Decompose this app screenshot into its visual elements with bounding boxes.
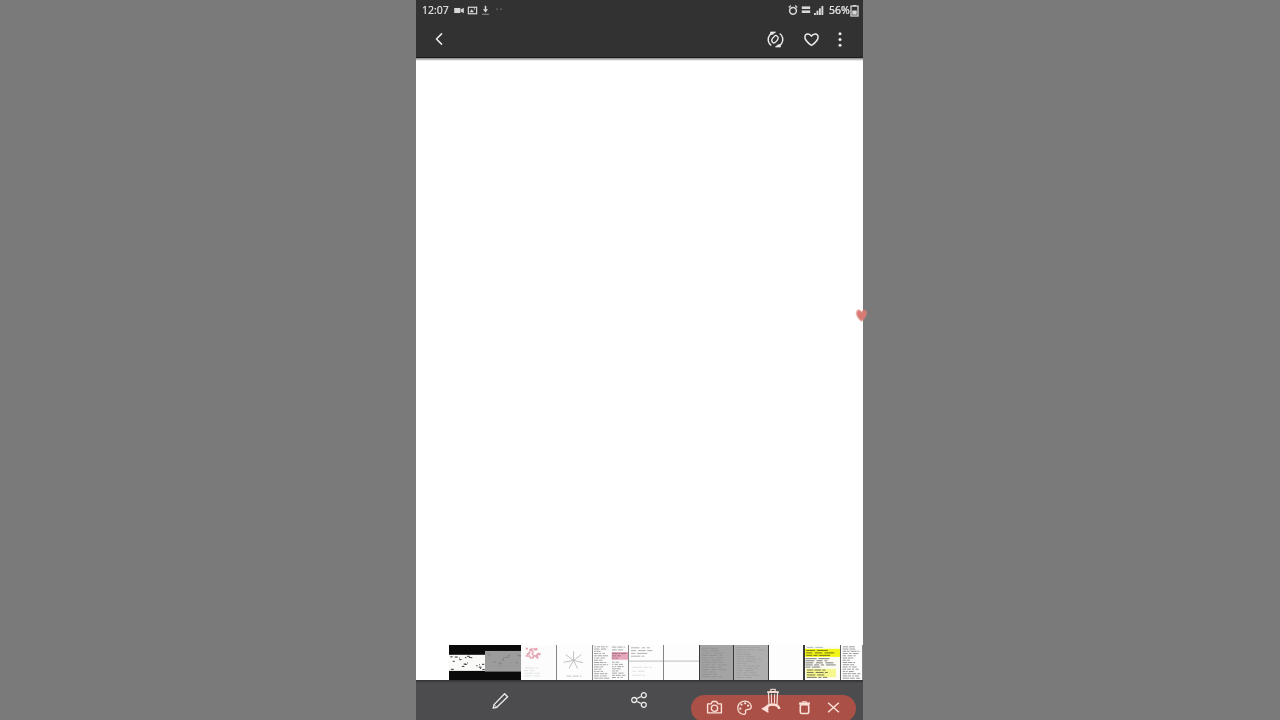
button[interactable]: Page 2 [485, 645, 521, 680]
button[interactable]: More options [826, 25, 854, 53]
staticText: 56% [829, 3, 850, 17]
button[interactable]: Page 1 [449, 645, 485, 680]
button[interactable]: Share [622, 683, 656, 717]
button[interactable]: Rotate [759, 23, 791, 55]
button[interactable]: Page 6 [629, 645, 664, 680]
button[interactable]: Page 8 [699, 645, 734, 680]
button[interactable]: Page 3 [521, 645, 557, 680]
button[interactable]: Page 9 [734, 645, 769, 680]
staticText: 12:07 [422, 3, 449, 17]
button[interactable]: Filter [730, 693, 758, 720]
button[interactable]: Page 7 [664, 645, 699, 680]
button[interactable]: Delete [790, 693, 818, 720]
button[interactable]: Page 5 [593, 645, 629, 680]
button[interactable]: Page 12 [841, 645, 863, 680]
button[interactable]: Restore [760, 688, 788, 718]
button[interactable]: Back [423, 23, 455, 55]
button[interactable]: Page 10 [769, 645, 804, 680]
button[interactable]: Page 11 [804, 645, 841, 680]
button[interactable]: Close [819, 693, 847, 720]
button[interactable]: Page 4 [557, 645, 593, 680]
other: Bookmark [854, 308, 869, 323]
button[interactable]: Edit [483, 683, 517, 717]
button[interactable]: Favorite [795, 23, 827, 55]
button[interactable]: Camera [700, 693, 728, 720]
